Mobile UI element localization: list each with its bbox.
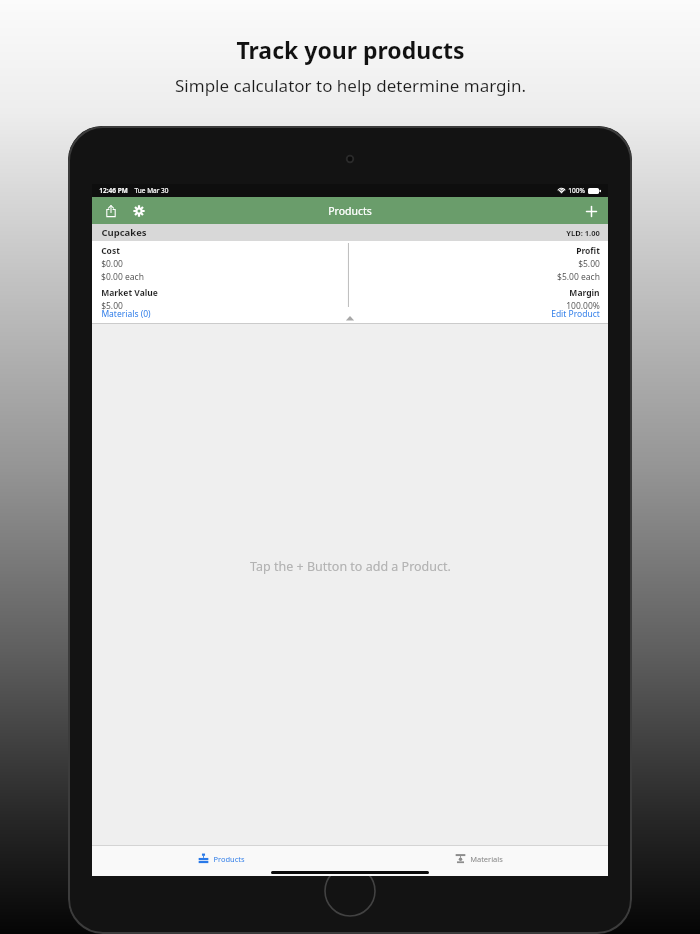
button[interactable]: Cupcakes bbox=[92, 224, 608, 324]
staticText: Track your products bbox=[236, 34, 465, 65]
button[interactable]: Edit Product bbox=[551, 308, 600, 320]
staticText: 100% bbox=[568, 186, 585, 195]
staticText: Margin bbox=[569, 287, 600, 299]
staticText: Materials (0) bbox=[101, 308, 151, 320]
staticText: Profit bbox=[576, 245, 600, 257]
staticText: Materials bbox=[470, 854, 503, 864]
staticText: 100.00% bbox=[566, 300, 600, 312]
staticText: $0.00 bbox=[101, 258, 123, 270]
staticText: $0.00 each bbox=[101, 271, 144, 283]
button[interactable]: Add product bbox=[581, 201, 601, 221]
staticText: Market Value bbox=[101, 287, 158, 299]
button[interactable]: Share bbox=[101, 201, 121, 221]
staticText: Simple calculator to help determine marg… bbox=[175, 74, 526, 97]
staticText: Products bbox=[213, 854, 245, 864]
staticText: Cupcakes bbox=[101, 226, 147, 239]
button[interactable]: Materials (0) bbox=[101, 308, 151, 320]
staticText: $5.00 bbox=[578, 258, 600, 270]
button[interactable]: Collapse bbox=[342, 314, 358, 322]
staticText: Tap the + Button to add a Product. bbox=[250, 558, 451, 575]
staticText: Edit Product bbox=[551, 308, 600, 320]
staticText: $5.00 each bbox=[557, 271, 600, 283]
staticText: Tue Mar 30 bbox=[134, 186, 169, 195]
button[interactable]: Materials bbox=[350, 846, 608, 876]
staticText: $5.00 bbox=[101, 300, 123, 312]
staticText: YLD: 1.00 bbox=[566, 228, 600, 238]
button[interactable]: Products bbox=[92, 846, 350, 876]
staticText: Products bbox=[328, 204, 372, 218]
staticText: Cost bbox=[101, 245, 120, 257]
button[interactable]: Settings bbox=[129, 201, 149, 221]
staticText: 12:46 PM bbox=[99, 186, 128, 195]
